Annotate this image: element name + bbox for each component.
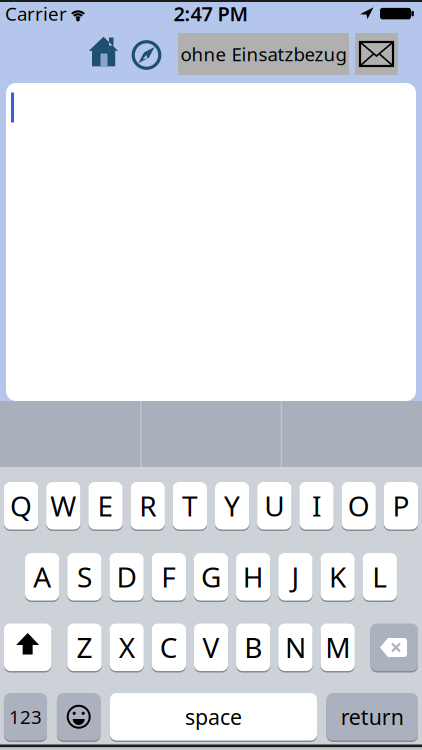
button[interactable]: V bbox=[194, 623, 228, 671]
staticText: A bbox=[33, 558, 51, 595]
button[interactable]: Delete bbox=[370, 623, 418, 671]
staticText: 123 bbox=[9, 704, 42, 729]
button[interactable]: N bbox=[278, 623, 313, 671]
button[interactable]: D bbox=[109, 553, 144, 600]
button[interactable]: return bbox=[326, 693, 418, 740]
button[interactable]: R bbox=[131, 482, 165, 529]
button[interactable]: H bbox=[236, 553, 270, 600]
staticText: ohne Einsatzbezug bbox=[180, 42, 346, 66]
staticText: J bbox=[291, 558, 299, 595]
staticText: I bbox=[312, 487, 321, 524]
staticText: M bbox=[325, 629, 350, 666]
button[interactable]: B bbox=[236, 623, 270, 671]
staticText: N bbox=[285, 629, 306, 666]
staticText: return bbox=[341, 703, 404, 731]
button[interactable]: T bbox=[173, 482, 207, 529]
staticText: W bbox=[50, 487, 76, 524]
button[interactable]: Home bbox=[87, 35, 119, 67]
staticText: O bbox=[348, 487, 370, 524]
staticText: B bbox=[244, 629, 262, 666]
button[interactable]: C bbox=[152, 623, 186, 671]
button[interactable]: Emoji bbox=[57, 693, 100, 740]
button[interactable]: Y bbox=[215, 482, 249, 529]
staticText: V bbox=[203, 629, 220, 666]
button[interactable]: L bbox=[363, 553, 397, 600]
staticText: E bbox=[97, 487, 113, 524]
staticText: P bbox=[392, 487, 409, 524]
button[interactable]: A bbox=[25, 553, 59, 600]
staticText: 2:47 PM bbox=[173, 0, 248, 27]
button[interactable]: Browse bbox=[129, 38, 163, 72]
button[interactable]: M bbox=[320, 623, 355, 671]
staticText: R bbox=[139, 487, 156, 524]
button[interactable]: F bbox=[152, 553, 186, 600]
button[interactable]: space bbox=[110, 693, 317, 740]
button[interactable]: Z bbox=[67, 623, 102, 671]
button[interactable]: K bbox=[320, 553, 355, 600]
staticText: C bbox=[160, 629, 178, 666]
staticText: X bbox=[119, 629, 135, 666]
staticText: space bbox=[185, 703, 242, 731]
staticText: Carrier bbox=[5, 1, 67, 26]
staticText: L bbox=[372, 558, 387, 595]
button[interactable]: E bbox=[88, 482, 123, 529]
button[interactable]: ohne Einsatzbezug bbox=[178, 33, 349, 75]
staticText: U bbox=[264, 487, 284, 524]
staticText: Z bbox=[76, 629, 92, 666]
button[interactable]: P bbox=[384, 482, 418, 529]
staticText: K bbox=[329, 558, 346, 595]
staticText: H bbox=[243, 558, 264, 595]
staticText: F bbox=[161, 558, 176, 595]
button[interactable]: Q bbox=[4, 482, 38, 529]
staticText: Y bbox=[224, 487, 240, 524]
staticText: T bbox=[182, 487, 198, 524]
button[interactable]: Mail bbox=[355, 33, 398, 75]
button[interactable]: O bbox=[342, 482, 376, 529]
button[interactable]: W bbox=[46, 482, 80, 529]
button[interactable]: 123 bbox=[4, 693, 47, 740]
staticText: Q bbox=[10, 487, 32, 524]
staticText: D bbox=[117, 558, 137, 595]
button[interactable]: J bbox=[278, 553, 313, 600]
button[interactable]: U bbox=[257, 482, 291, 529]
button[interactable]: Shift bbox=[4, 623, 51, 671]
button[interactable]: G bbox=[194, 553, 228, 600]
button[interactable]: X bbox=[109, 623, 144, 671]
staticText: S bbox=[77, 558, 92, 595]
button[interactable]: I bbox=[299, 482, 334, 529]
button[interactable]: S bbox=[67, 553, 102, 600]
staticText: G bbox=[201, 558, 221, 595]
